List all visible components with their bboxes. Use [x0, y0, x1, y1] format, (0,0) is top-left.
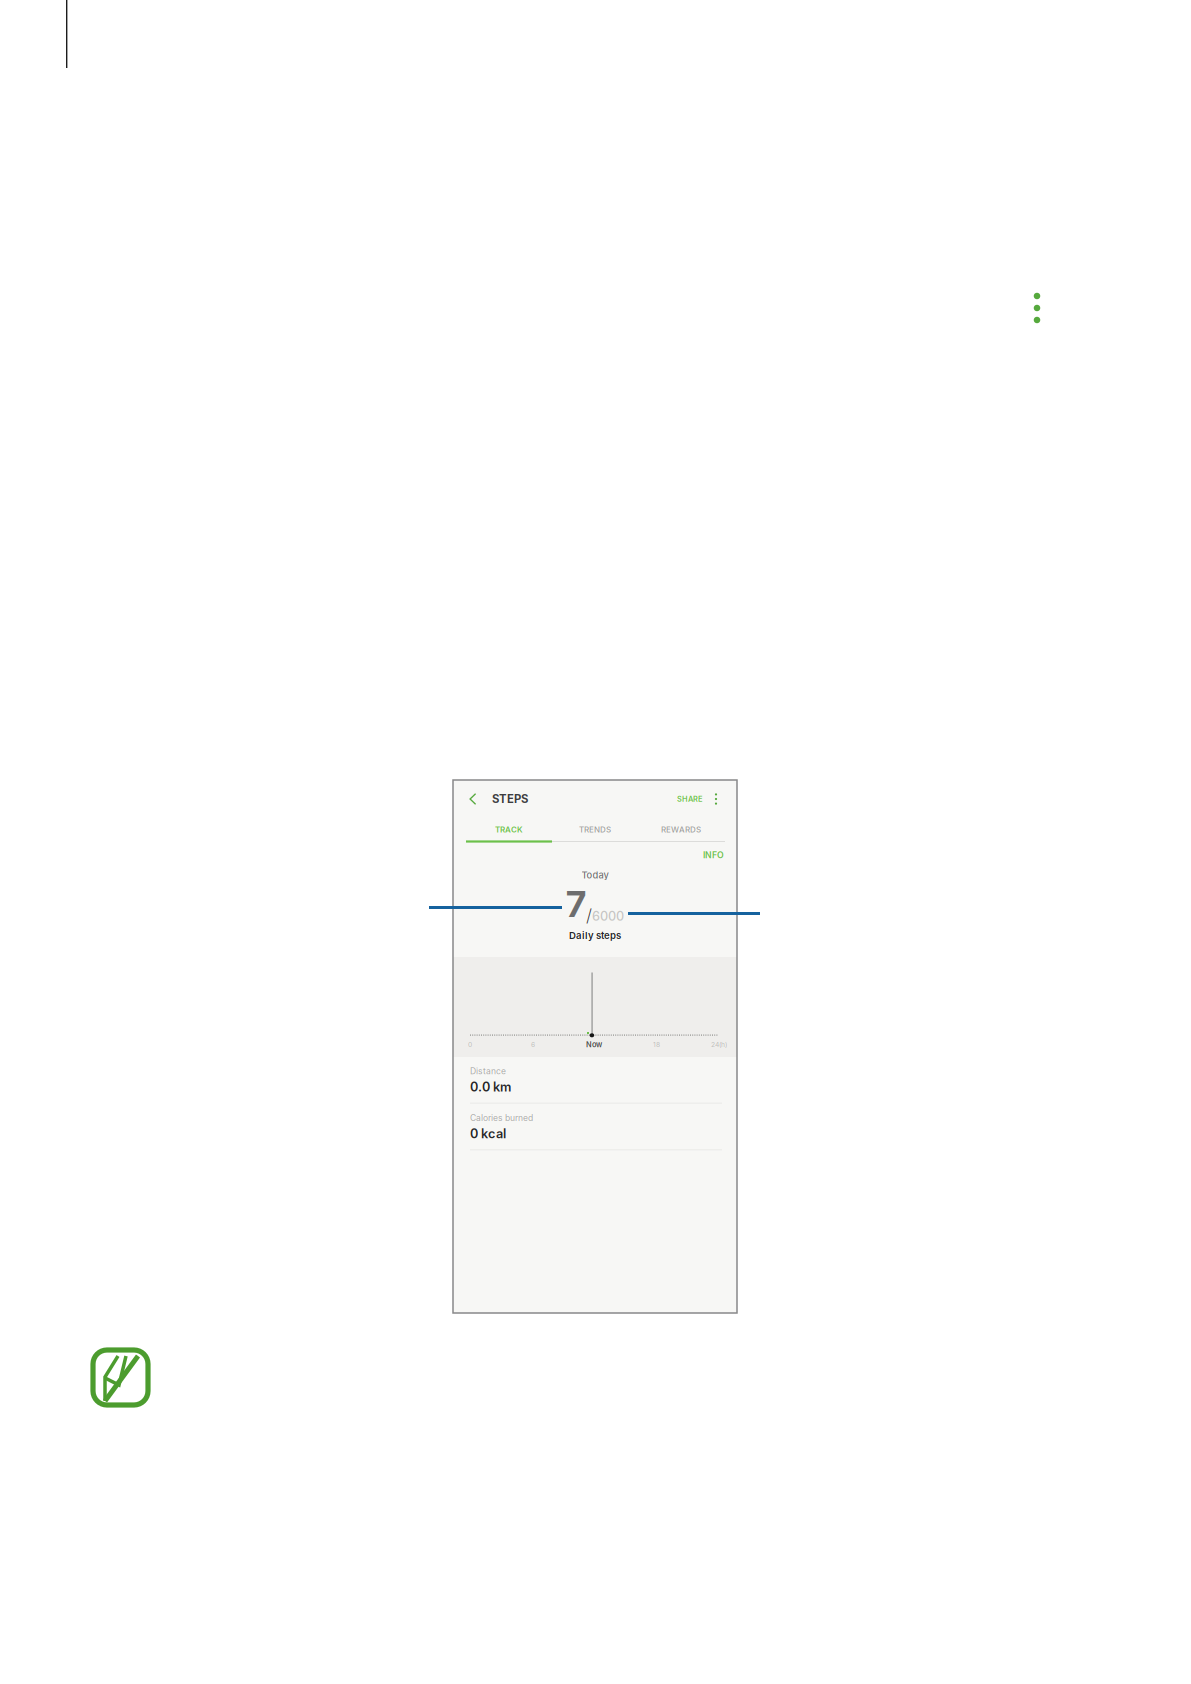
staticText: Now [586, 1040, 602, 1049]
staticText: 0.0 km [470, 1079, 511, 1095]
staticText: 18 [653, 1040, 660, 1049]
button[interactable]: More options [703, 782, 729, 816]
button[interactable]: TRACK [466, 818, 552, 840]
staticText: TRENDS [579, 825, 611, 834]
button[interactable]: INFO [698, 847, 729, 863]
button[interactable]: SHARE [677, 782, 703, 816]
button[interactable]: REWARDS [638, 818, 724, 840]
staticText: STEPS [492, 792, 528, 806]
staticText: SHARE [677, 794, 703, 803]
staticText: TRACK [495, 825, 523, 834]
staticText: INFO [703, 850, 724, 860]
staticText: 6000 [592, 908, 624, 924]
staticText: 7 [566, 882, 586, 926]
staticText: 24(h) [711, 1040, 727, 1049]
button[interactable]: More options [1020, 286, 1054, 330]
button[interactable]: Back [458, 782, 488, 816]
staticText: Distance [470, 1066, 506, 1076]
staticText: Today [581, 869, 608, 881]
staticText: REWARDS [661, 825, 701, 834]
staticText: Calories burned [470, 1113, 533, 1123]
staticText: 0 kcal [470, 1126, 506, 1141]
staticText: Daily steps [569, 930, 621, 941]
button[interactable]: TRENDS [552, 818, 638, 840]
staticText: 0 [468, 1040, 472, 1049]
staticText: / [586, 905, 592, 926]
staticText: 6 [531, 1040, 535, 1049]
